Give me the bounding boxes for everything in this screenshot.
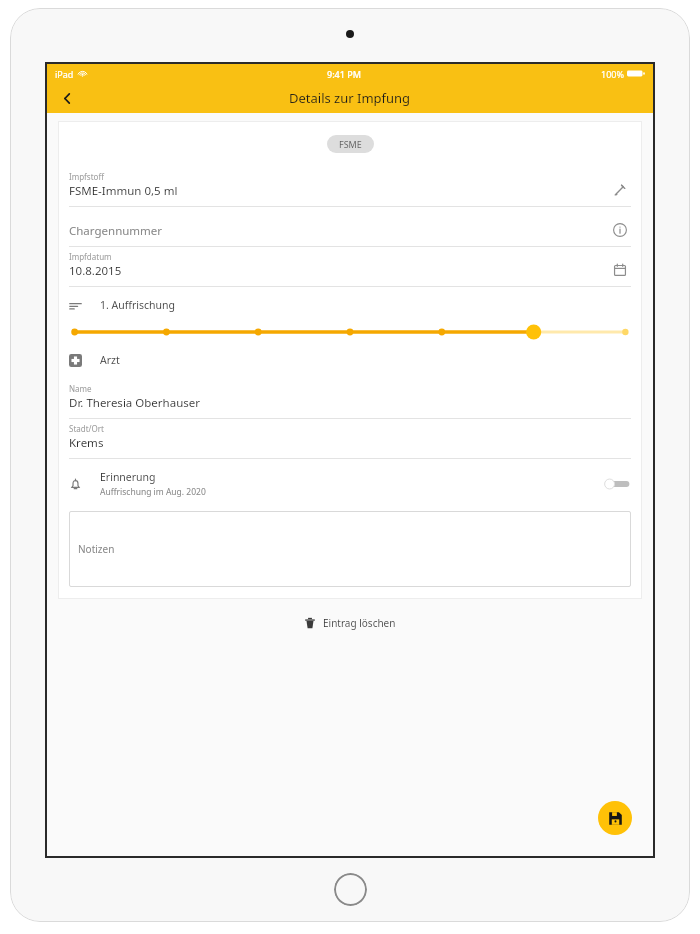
- button[interactable]: FSME: [327, 135, 374, 153]
- button[interactable]: Name: [69, 379, 631, 418]
- staticText: Stadt/Ort: [69, 423, 104, 434]
- button[interactable]: Save: [598, 801, 632, 835]
- staticText: Eintrag löschen: [323, 616, 396, 630]
- button[interactable]: Eintrag löschen: [296, 611, 404, 635]
- staticText: Auffrischung im Aug. 2020: [100, 486, 206, 498]
- staticText: Arzt: [100, 353, 120, 367]
- staticText: Impfdatum: [69, 251, 112, 262]
- button[interactable]: [69, 323, 631, 341]
- button[interactable]: Impfstoff: [69, 167, 631, 206]
- staticText: Erinnerung: [100, 470, 156, 484]
- button[interactable]: Stadt/Ort: [69, 419, 631, 458]
- button[interactable]: Impfdatum: [69, 247, 631, 286]
- button[interactable]: Pick date: [609, 259, 631, 281]
- button[interactable]: Arzt: [69, 353, 631, 367]
- button[interactable]: Edit: [609, 179, 631, 201]
- staticText: 10.8.2015: [69, 263, 122, 279]
- staticText: 1. Auffrischung: [100, 298, 176, 312]
- staticText: Notizen: [78, 542, 115, 556]
- staticText: iPad: [55, 68, 74, 80]
- staticText: Dr. Theresia Oberhauser: [69, 395, 200, 411]
- staticText: Krems: [69, 435, 104, 451]
- button[interactable]: Erinnerung: [69, 468, 631, 500]
- button[interactable]: Notizen: [69, 511, 631, 587]
- staticText: 100%: [601, 68, 624, 80]
- staticText: Chargennummer: [69, 223, 163, 239]
- staticText: FSME-Immun 0,5 ml: [69, 183, 178, 199]
- staticText: FSME: [339, 138, 362, 150]
- staticText: Details zur Impfung: [289, 89, 411, 107]
- button[interactable]: 1. Auffrischung: [69, 298, 631, 312]
- button[interactable]: Info: [609, 219, 631, 241]
- staticText: Impfstoff: [69, 171, 104, 182]
- button[interactable]: Reminder toggle: [604, 476, 631, 492]
- button[interactable]: Back: [56, 87, 78, 109]
- button[interactable]: Chargennummer: [69, 207, 631, 246]
- staticText: Name: [69, 383, 92, 394]
- staticText: 9:41 PM: [327, 68, 361, 80]
